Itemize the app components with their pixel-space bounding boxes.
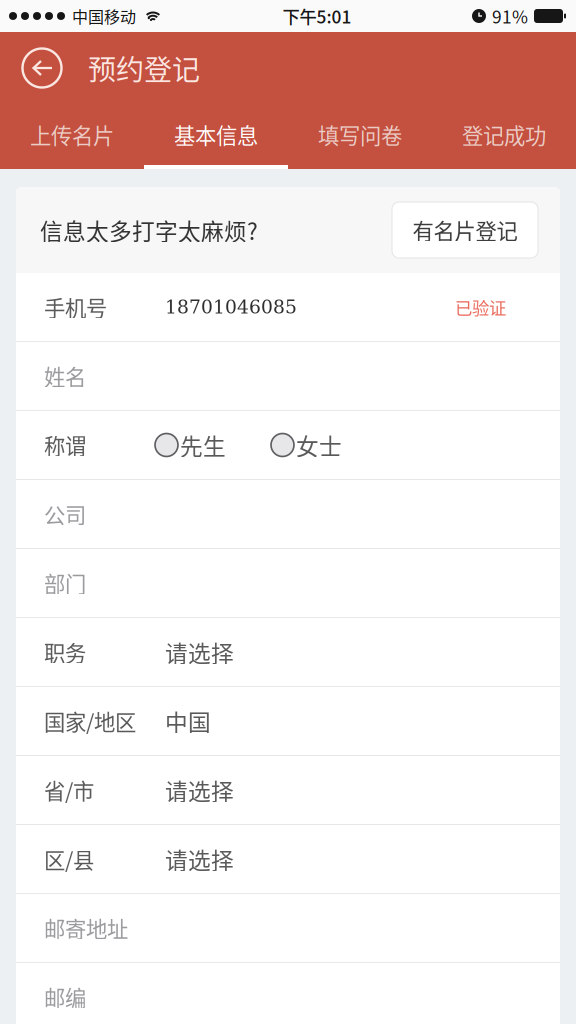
staticText: 手机号 bbox=[44, 292, 107, 322]
staticText: 国家/地区 bbox=[44, 706, 136, 736]
staticText: 称谓 bbox=[44, 430, 86, 460]
staticText: 请选择 bbox=[165, 636, 234, 668]
staticText: 预约登记 bbox=[88, 48, 200, 88]
button[interactable]: 返回 bbox=[18, 40, 66, 96]
staticText: 中国 bbox=[165, 705, 211, 737]
staticText: 信息太多打字太麻烦? bbox=[40, 214, 258, 246]
staticText: 18701046085 bbox=[165, 296, 297, 318]
staticText: 填写问卷 bbox=[318, 119, 402, 150]
staticText: 职务 bbox=[44, 637, 86, 667]
button[interactable]: 登记成功 bbox=[432, 104, 576, 169]
staticText: 已验证 bbox=[455, 294, 506, 320]
staticText: 中国移动 bbox=[72, 4, 136, 28]
staticText: 姓名 bbox=[44, 361, 86, 391]
button[interactable]: 公司 bbox=[16, 480, 560, 549]
staticText: 邮寄地址 bbox=[44, 913, 128, 943]
staticText: 先生 bbox=[180, 429, 226, 461]
button[interactable]: 区/县 bbox=[16, 825, 560, 894]
staticText: 省/市 bbox=[44, 775, 94, 805]
button[interactable]: 填写问卷 bbox=[288, 104, 432, 169]
button[interactable]: 称谓 bbox=[16, 411, 560, 480]
staticText: 邮编 bbox=[44, 982, 86, 1012]
button[interactable]: 邮寄地址 bbox=[16, 894, 560, 963]
button[interactable]: 基本信息 bbox=[144, 104, 288, 169]
button[interactable]: 姓名 bbox=[16, 342, 560, 411]
button[interactable]: 邮编 bbox=[16, 963, 560, 1024]
button[interactable]: 手机号 bbox=[16, 273, 560, 342]
staticText: 基本信息 bbox=[174, 119, 258, 150]
staticText: 91% bbox=[492, 3, 528, 29]
staticText: 区/县 bbox=[44, 844, 94, 874]
staticText: 公司 bbox=[44, 499, 86, 529]
staticText: 女士 bbox=[296, 429, 342, 461]
staticText: 请选择 bbox=[165, 843, 234, 875]
staticText: 有名片登记 bbox=[412, 215, 517, 245]
button[interactable]: 国家/地区 bbox=[16, 687, 560, 756]
staticText: 下午5:01 bbox=[282, 3, 351, 29]
button[interactable]: 省/市 bbox=[16, 756, 560, 825]
button[interactable]: 有名片登记 bbox=[392, 202, 538, 258]
staticText: 部门 bbox=[44, 568, 86, 598]
staticText: 请选择 bbox=[165, 774, 234, 806]
button[interactable]: 职务 bbox=[16, 618, 560, 687]
button[interactable]: 上传名片 bbox=[0, 104, 144, 169]
staticText: 上传名片 bbox=[30, 119, 114, 150]
button[interactable]: 部门 bbox=[16, 549, 560, 618]
staticText: 登记成功 bbox=[462, 119, 546, 150]
